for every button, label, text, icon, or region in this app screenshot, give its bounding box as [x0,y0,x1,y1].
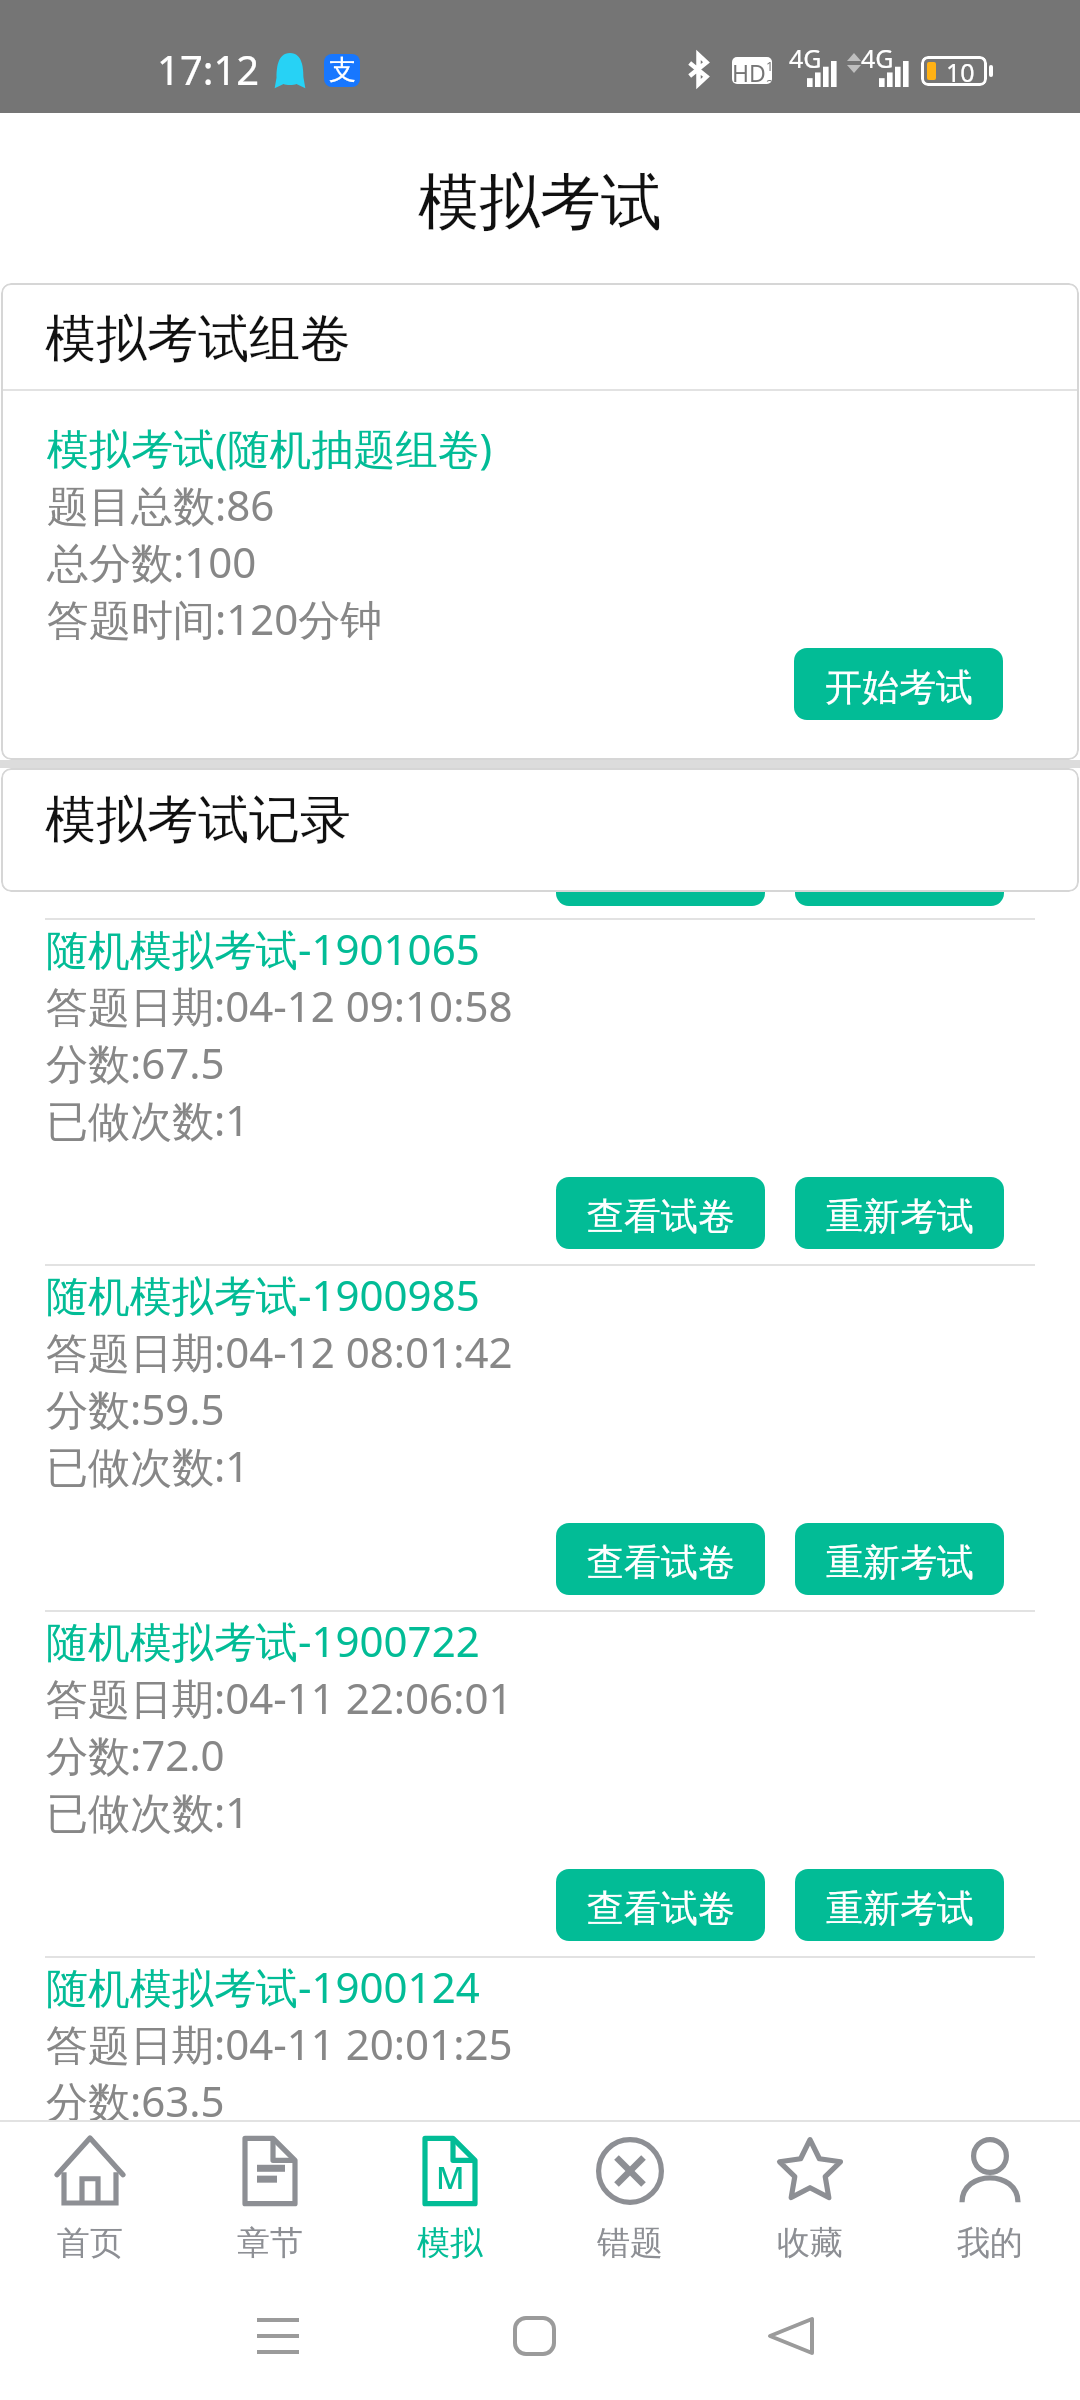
staticText: 章节 [237,2222,303,2264]
staticText: 我的 [957,2222,1023,2264]
button[interactable]: 随机模拟考试-1900722 [0,1610,1080,1956]
staticText: 模拟考试组卷 [45,307,351,371]
button[interactable]: 收藏 [720,2122,900,2280]
staticText: 已做次数:1 [46,1098,250,1149]
button[interactable]: 错题 [540,2122,720,2280]
staticText: 查看试卷 [587,2231,735,2278]
staticText: 随机模拟考试-1901065 [46,927,480,978]
staticText: 2 [766,75,772,84]
button[interactable]: 随机模拟考试-1900985 [0,1264,1080,1610]
staticText: 重新考试 [826,1193,974,1240]
staticText: 模拟 [417,2222,483,2264]
staticText: 模拟考试(随机抽题组卷) [47,426,493,477]
staticText: 4G [789,41,822,75]
button[interactable]: Recent apps [248,2310,308,2370]
button[interactable]: 查看试卷 [556,1523,765,1595]
staticText: 随机模拟考试-1900722 [46,1619,480,1670]
staticText: 答题时间:120分钟 [47,597,383,648]
staticText: 查看试卷 [587,850,735,897]
staticText: 随机模拟考试-1900985 [46,1273,480,1324]
button[interactable]: 模拟考试(随机抽题组卷) [1,391,1079,723]
staticText: 首页 [57,2222,123,2264]
staticText: 17:12 [157,42,260,96]
staticText: 分数:67.5 [46,1041,225,1092]
button[interactable]: Back [762,2310,822,2370]
button[interactable]: 我的 [900,2122,1080,2280]
staticText: 已做次数:1 [46,1444,250,1495]
button[interactable]: 重新考试 [795,1869,1004,1941]
staticText: 答题日期:04-12 09:10:58 [46,984,513,1035]
button[interactable]: 查看试卷 [556,2215,765,2287]
staticText: M [436,2156,465,2198]
staticText: 总分数:100 [47,540,257,591]
button[interactable]: 首页 [0,2122,180,2280]
button[interactable]: 查看试卷 [556,1177,765,1249]
staticText: 模拟考试 [418,164,662,241]
staticText: 已做次数:1 [46,1790,250,1841]
staticText: 已做次数:1 [46,2136,250,2187]
button[interactable]: 随机模拟考试-1901065 [0,918,1080,1264]
button[interactable]: 查看试卷 [556,834,765,906]
staticText: 查看试卷 [587,1539,735,1586]
staticText: 4G [861,41,894,75]
staticText: 分数:72.0 [46,1733,225,1784]
staticText: 收藏 [777,2222,843,2264]
staticText: 10 [946,56,975,85]
button[interactable]: 重新考试 [795,1177,1004,1249]
staticText: 答题日期:04-12 08:01:42 [46,1330,513,1381]
button[interactable]: 重新考试 [795,1523,1004,1595]
staticText: 重新考试 [826,2231,974,2278]
button[interactable]: 查看试卷 [556,1869,765,1941]
staticText: 题目总数:86 [47,483,275,534]
staticText: 分数:59.5 [46,1387,225,1438]
button[interactable]: 章节 [180,2122,360,2280]
button[interactable]: 随机模拟考试-1900124 [0,1956,1080,2302]
staticText: 分数:63.5 [46,2079,225,2130]
staticText: 随机模拟考试-1900124 [46,1965,480,2016]
staticText: 答题日期:04-11 22:06:01 [46,1676,513,1727]
staticText: 1 [766,57,772,75]
staticText: 重新考试 [826,1539,974,1586]
staticText: 重新考试 [826,1885,974,1932]
staticText: 答题日期:04-11 20:01:25 [46,2022,513,2073]
button[interactable]: M [360,2122,540,2280]
staticText: 支 [329,54,356,86]
button[interactable]: 开始考试 [794,648,1003,720]
staticText: 错题 [597,2222,663,2264]
staticText: 开始考试 [825,664,973,711]
button[interactable]: 重新考试 [795,834,1004,906]
button[interactable]: 重新考试 [795,2215,1004,2287]
button[interactable]: Home [505,2310,565,2370]
staticText: 查看试卷 [587,1193,735,1240]
staticText: 查看试卷 [587,1885,735,1932]
staticText: 重新考试 [826,850,974,897]
staticText: 模拟考试记录 [45,788,351,852]
staticText: HD [732,57,766,84]
